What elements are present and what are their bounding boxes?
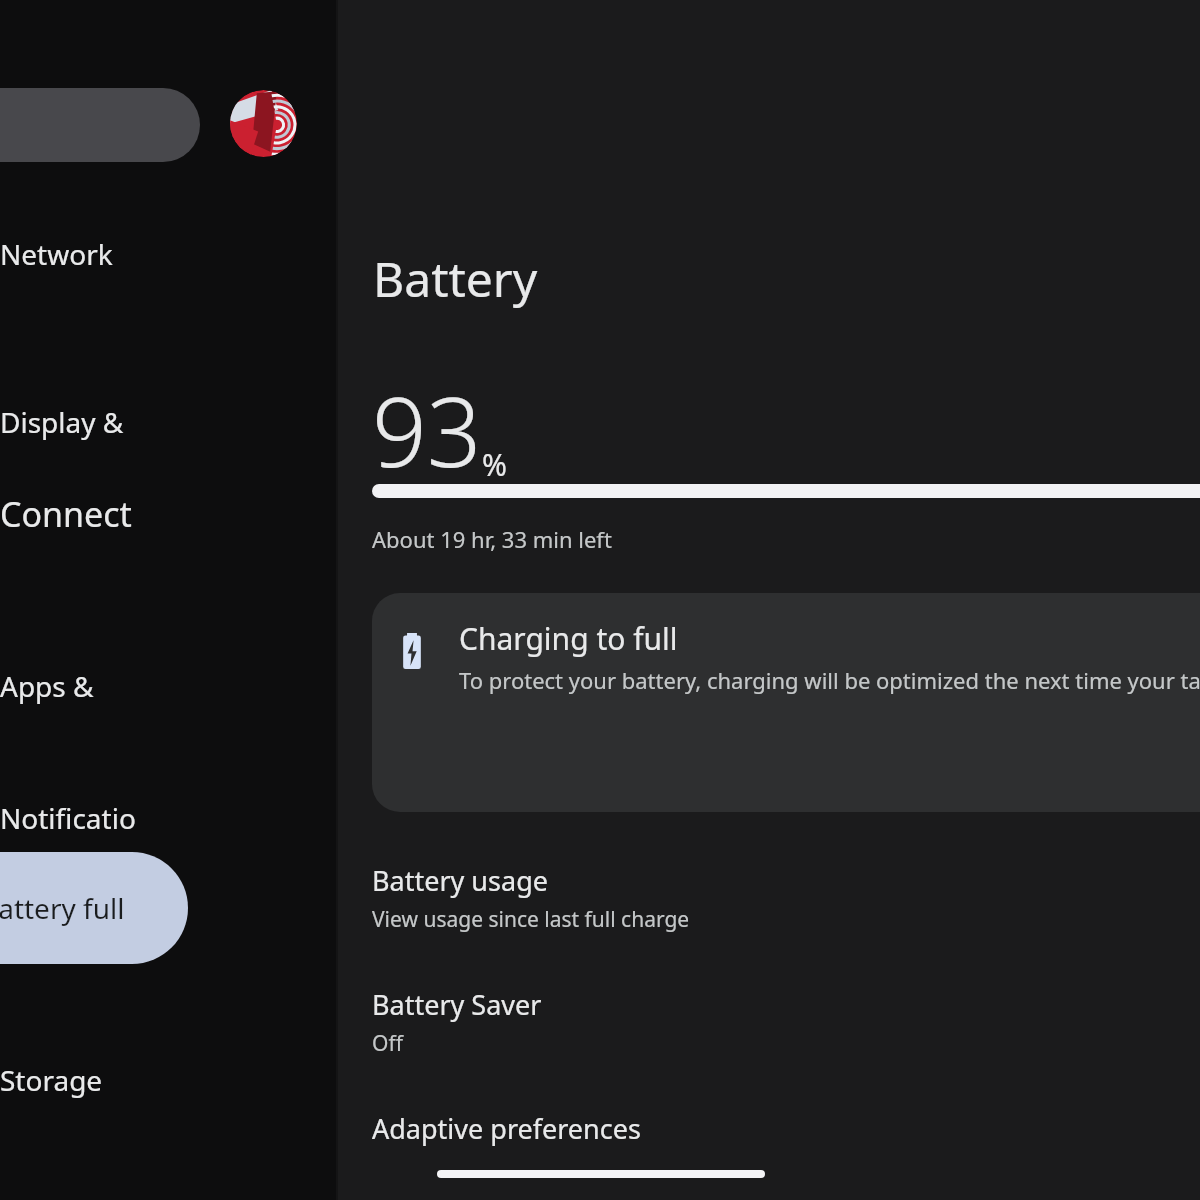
staticText: Adaptive preferences bbox=[372, 1110, 641, 1147]
button[interactable]: Battery usage bbox=[338, 856, 1200, 952]
staticText: Display & touch options bbox=[0, 403, 138, 441]
staticText: Notifications & conversations bbox=[0, 799, 138, 837]
button[interactable]: Apps & default apps bbox=[0, 658, 138, 714]
staticText: To protect your battery, charging will b… bbox=[459, 665, 1200, 695]
button[interactable]: Battery Saver bbox=[338, 980, 1200, 1076]
button[interactable]: Search settings bbox=[0, 88, 200, 162]
staticText: Battery bbox=[373, 246, 538, 311]
staticText: About 19 hr, 33 min left bbox=[372, 524, 612, 554]
staticText: Connected devices bbox=[0, 491, 138, 537]
button[interactable]: Charging to full bbox=[372, 593, 1200, 812]
staticText: 93 bbox=[372, 364, 482, 495]
staticText: Apps & default apps bbox=[0, 667, 138, 705]
staticText: Battery full bbox=[0, 889, 125, 927]
staticText: Charging to full bbox=[459, 618, 678, 659]
button[interactable]: Adaptive preferences bbox=[338, 1104, 1200, 1166]
button[interactable]: Network & internet bbox=[0, 226, 138, 282]
button[interactable]: Storage bbox=[0, 1052, 138, 1108]
button[interactable]: Account bbox=[230, 90, 297, 157]
button[interactable]: Battery full bbox=[0, 852, 188, 964]
staticText: % bbox=[482, 444, 507, 485]
staticText: View usage since last full charge bbox=[372, 905, 690, 934]
button[interactable]: Display & touch options bbox=[0, 394, 138, 450]
staticText: Off bbox=[372, 1029, 403, 1058]
staticText: Storage bbox=[0, 1061, 103, 1099]
staticText: Battery Saver bbox=[372, 986, 542, 1023]
staticText: Network & internet bbox=[0, 235, 138, 273]
staticText: Battery usage bbox=[372, 862, 548, 899]
button[interactable]: Connected devices bbox=[0, 482, 138, 546]
button[interactable]: Notifications & conversations bbox=[0, 790, 138, 846]
